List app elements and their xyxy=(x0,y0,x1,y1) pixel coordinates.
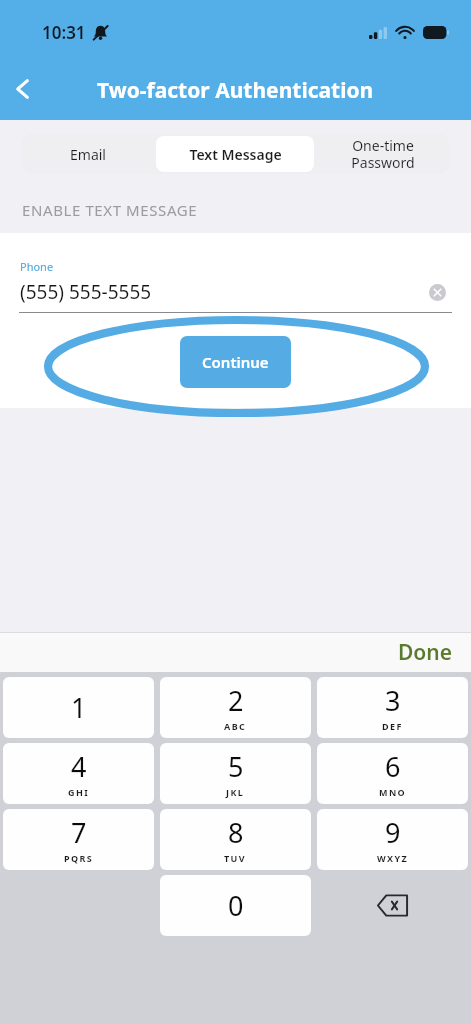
staticText: PQRS xyxy=(64,852,94,864)
staticText: JKL xyxy=(226,786,245,798)
staticText: 7 xyxy=(71,814,87,851)
staticText: Phone xyxy=(20,259,54,274)
button[interactable]: 8 xyxy=(160,809,311,870)
button[interactable]: One-time Password xyxy=(316,134,449,174)
staticText: 9 xyxy=(385,814,401,851)
staticText: One-time Password xyxy=(351,136,415,172)
button[interactable]: Back xyxy=(0,66,46,112)
staticText: Two-factor Authentication xyxy=(97,76,374,105)
button[interactable]: Backspace xyxy=(317,875,468,936)
button[interactable]: (555) 555-5555 xyxy=(0,277,471,307)
button[interactable]: Text Message xyxy=(156,136,314,172)
staticText: 1 xyxy=(71,689,87,726)
staticText: 2 xyxy=(228,682,244,719)
button[interactable]: Done xyxy=(390,634,461,671)
staticText: 0 xyxy=(228,887,244,924)
button[interactable]: Email xyxy=(22,134,154,174)
button[interactable]: 5 xyxy=(160,743,311,804)
staticText: TUV xyxy=(224,852,247,864)
staticText: MNO xyxy=(379,786,407,798)
button[interactable]: 1 xyxy=(3,677,154,738)
staticText: Text Message xyxy=(189,145,282,164)
staticText: 3 xyxy=(385,682,401,719)
staticText: DEF xyxy=(382,720,403,732)
staticText: Email xyxy=(70,145,106,164)
staticText: 5 xyxy=(228,748,244,785)
staticText: 8 xyxy=(228,814,244,851)
button[interactable]: 0 xyxy=(160,875,311,936)
button[interactable]: 7 xyxy=(3,809,154,870)
staticText: Done xyxy=(398,638,453,667)
staticText: ABC xyxy=(224,720,247,732)
staticText: WXYZ xyxy=(377,852,409,864)
button[interactable]: Clear text xyxy=(425,280,449,304)
button[interactable]: 6 xyxy=(317,743,468,804)
button[interactable]: 4 xyxy=(3,743,154,804)
staticText: ENABLE TEXT MESSAGE xyxy=(22,200,198,220)
button[interactable]: Continue xyxy=(180,336,291,388)
staticText: 10:31 xyxy=(42,21,86,44)
staticText: 4 xyxy=(71,748,87,785)
staticText: Continue xyxy=(202,352,269,372)
staticText: (555) 555-5555 xyxy=(20,279,152,305)
button[interactable]: 9 xyxy=(317,809,468,870)
staticText: GHI xyxy=(68,786,90,798)
button[interactable]: 2 xyxy=(160,677,311,738)
staticText: 6 xyxy=(385,748,401,785)
button[interactable]: 3 xyxy=(317,677,468,738)
